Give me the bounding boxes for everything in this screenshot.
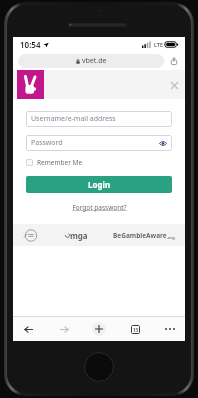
button[interactable]: Tabs — [128, 322, 142, 336]
button[interactable]: Close — [168, 79, 180, 91]
button[interactable]: Remember Me — [26, 158, 172, 167]
staticText: 10:54 — [20, 39, 41, 50]
button[interactable]: Forgot password? — [72, 203, 127, 212]
staticText: BeGambleAware — [113, 231, 167, 240]
staticText: Username/e-mail address — [31, 114, 116, 124]
staticText: LTE — [154, 41, 163, 48]
button[interactable]: Password — [26, 135, 172, 151]
button[interactable]: mga — [65, 230, 88, 241]
staticText: 13 — [133, 327, 139, 333]
staticText: .org — [167, 235, 175, 240]
button[interactable]: Share — [168, 55, 180, 67]
button[interactable]: Login — [26, 176, 172, 193]
button[interactable]: New tab — [92, 322, 106, 336]
staticText: Login — [88, 179, 111, 190]
button[interactable]: Back — [21, 322, 35, 336]
staticText: vbet.de — [82, 56, 107, 66]
staticText: Remember Me — [37, 158, 83, 167]
button[interactable]: More — [163, 322, 177, 336]
button[interactable]: BeGambleAware — [113, 231, 175, 240]
button[interactable]: Certification — [23, 229, 39, 242]
button[interactable]: vbet.de — [18, 54, 164, 68]
button[interactable]: Vbet logo — [17, 70, 44, 99]
other: Home — [84, 352, 114, 382]
button[interactable]: Forward — [57, 322, 71, 336]
button[interactable]: Username/e-mail address — [26, 111, 172, 127]
staticText: Password — [31, 138, 63, 148]
staticText: mga — [70, 230, 88, 241]
